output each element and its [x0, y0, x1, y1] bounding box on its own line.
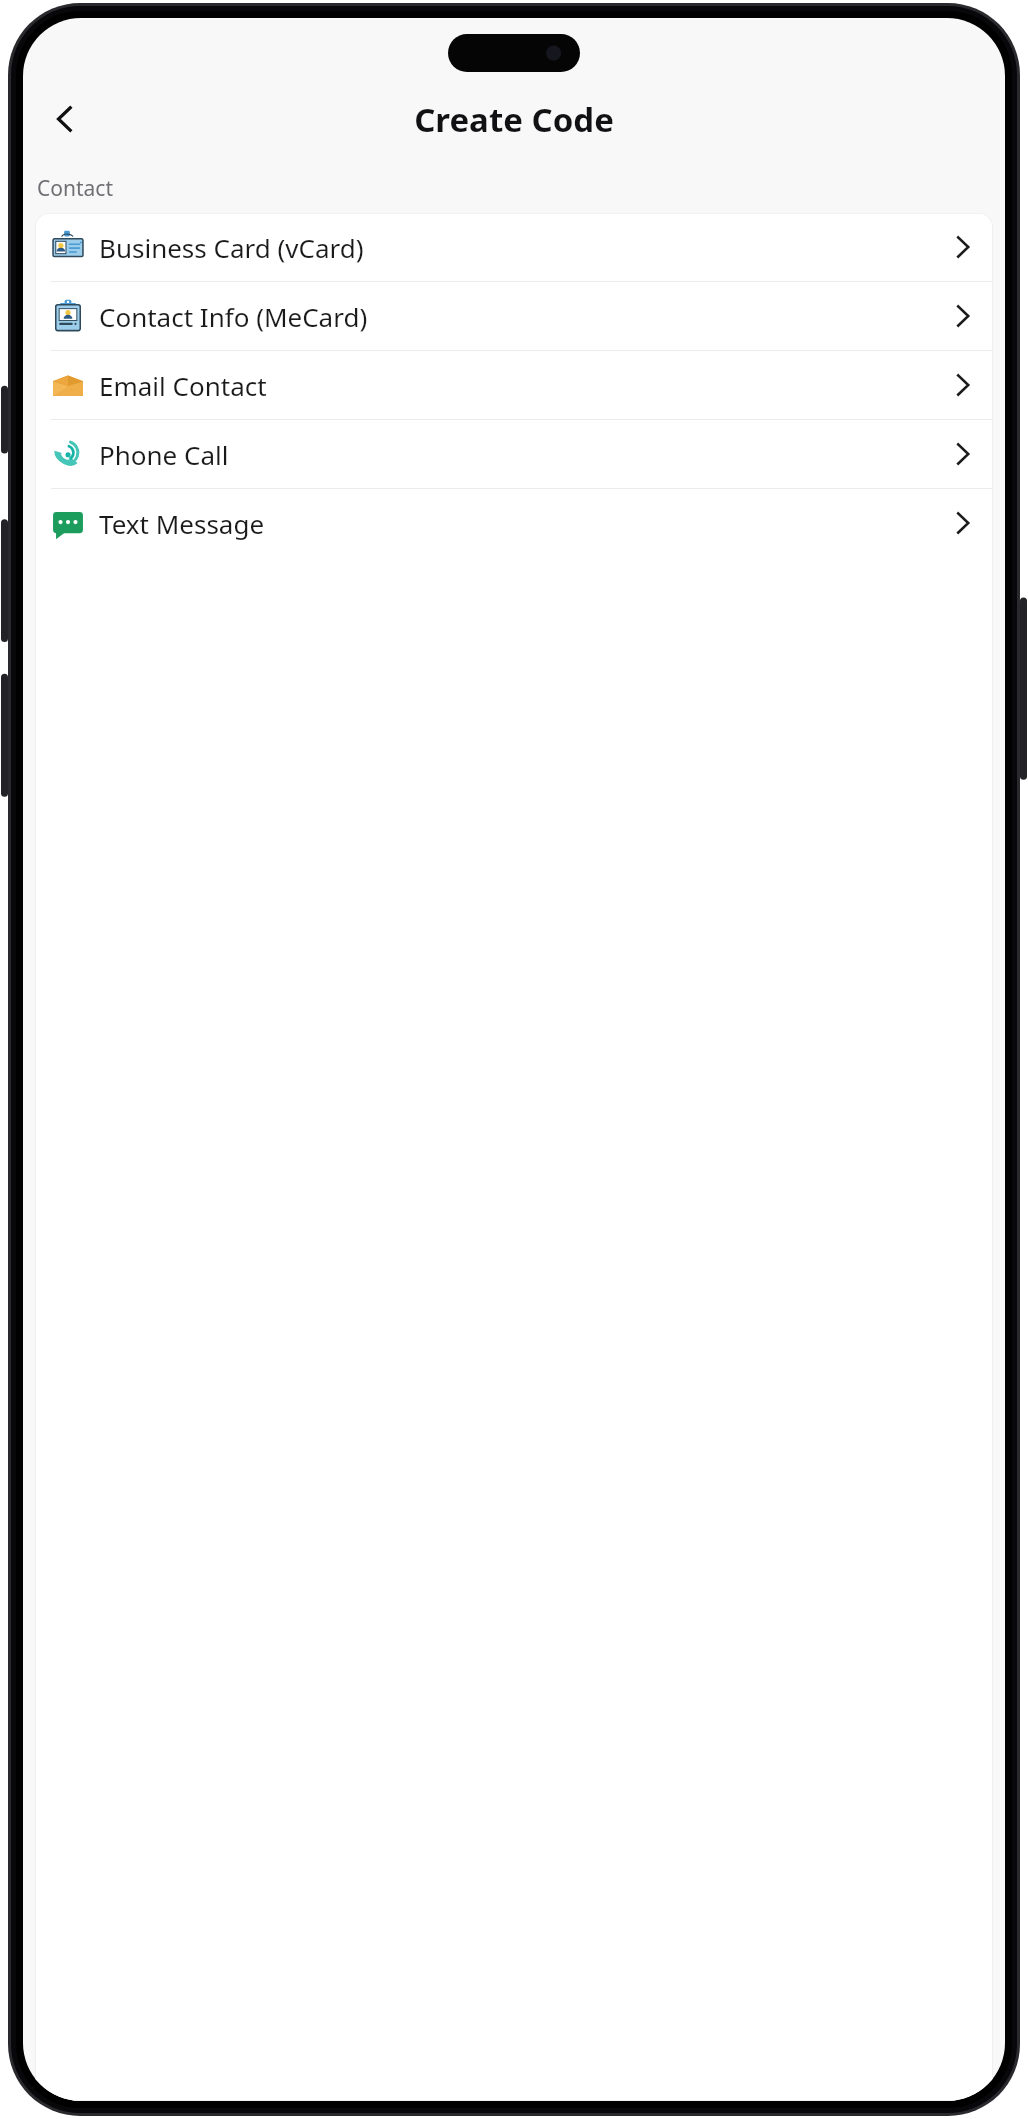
button[interactable]: Phone Call	[35, 420, 993, 488]
button[interactable]: Business Card (vCard)	[35, 213, 993, 281]
staticText: Email Contact	[99, 368, 951, 403]
button[interactable]: Email Contact	[35, 351, 993, 419]
button[interactable]: Back	[33, 87, 97, 151]
button[interactable]: Text Message	[35, 489, 993, 557]
button[interactable]: Contact Info (MeCard)	[35, 282, 993, 350]
staticText: Text Message	[99, 506, 951, 541]
staticText: Business Card (vCard)	[99, 230, 951, 265]
staticText: Contact Info (MeCard)	[99, 299, 951, 334]
staticText: Create Code	[414, 97, 614, 142]
staticText: Contact	[37, 174, 113, 203]
staticText: Phone Call	[99, 437, 951, 472]
